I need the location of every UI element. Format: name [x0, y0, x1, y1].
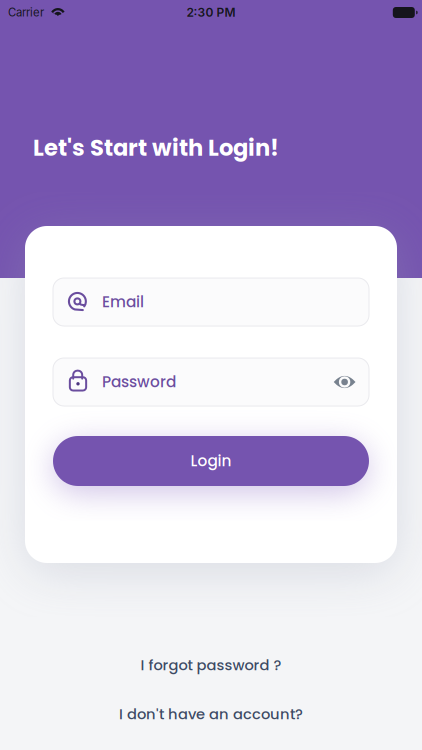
- staticText: Email: [102, 291, 144, 313]
- button[interactable]: Login: [53, 436, 369, 486]
- staticText: Let's Start with Login!: [33, 132, 279, 164]
- staticText: Login: [190, 450, 231, 472]
- staticText: I don't have an account?: [119, 704, 303, 724]
- staticText: 2:30 PM: [186, 5, 235, 20]
- staticText: Password: [102, 371, 176, 393]
- staticText: I forgot password ?: [140, 655, 281, 675]
- button[interactable]: I don't have an account?: [0, 697, 422, 731]
- button[interactable]: I forgot password ?: [0, 648, 422, 682]
- staticText: Carrier: [8, 6, 44, 19]
